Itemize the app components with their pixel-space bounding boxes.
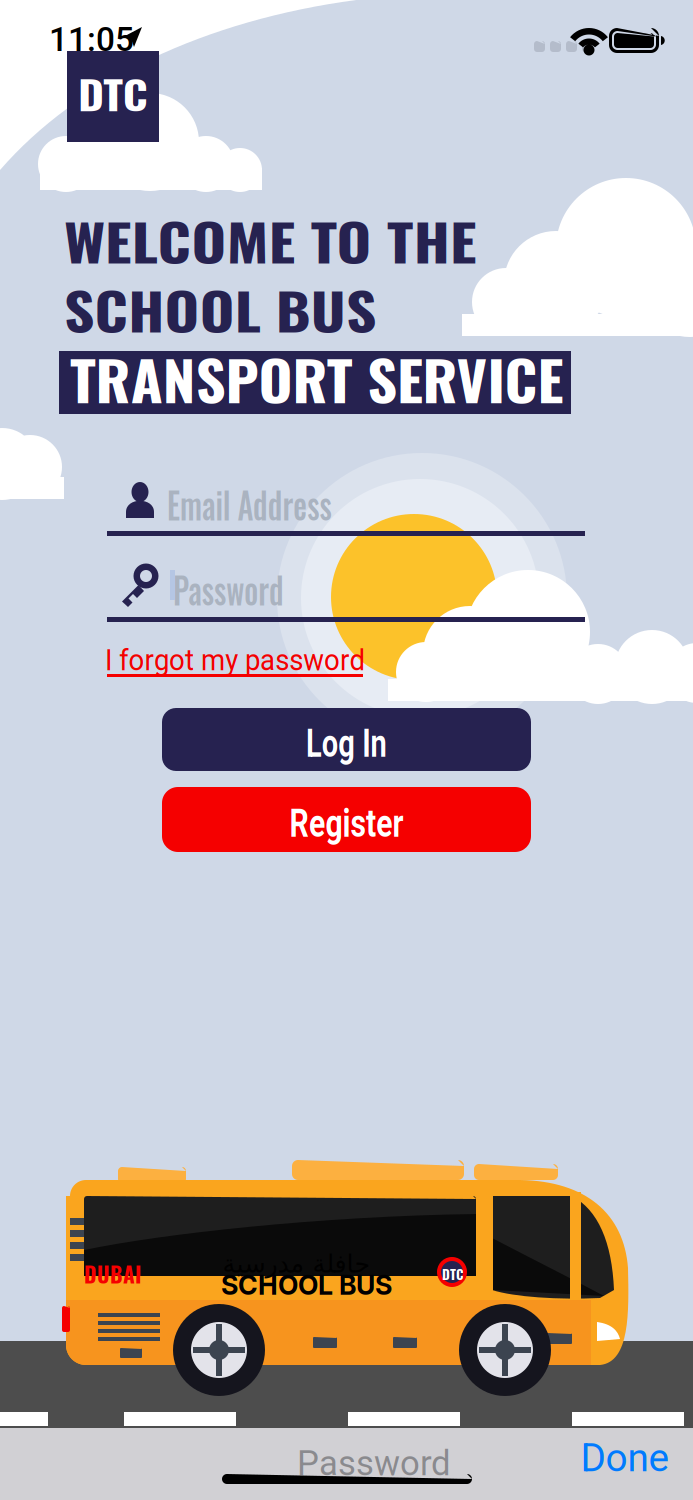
button[interactable]: I forgot my password xyxy=(105,645,382,689)
staticText: SCHOOL BUS xyxy=(221,1269,392,1301)
staticText: DTC xyxy=(78,65,139,122)
staticText: Password xyxy=(297,1443,451,1484)
staticText: DTC xyxy=(442,1264,464,1284)
staticText: 11:05 xyxy=(49,20,134,59)
staticText: Password xyxy=(173,561,308,616)
staticText: SCHOOL BUS xyxy=(64,272,331,347)
staticText: I forgot my password xyxy=(105,643,382,677)
button[interactable]: Done xyxy=(570,1430,680,1486)
staticText: Done xyxy=(580,1435,669,1481)
button[interactable]: Log In xyxy=(162,708,531,771)
staticText: Log In xyxy=(292,721,400,766)
staticText: TRANSPORT SERVICE xyxy=(70,338,533,419)
staticText: WELCOME TO THE xyxy=(64,203,417,278)
staticText: حافلة مدرسية xyxy=(222,1249,370,1278)
button[interactable]: Register xyxy=(162,787,531,852)
staticText: Email Address xyxy=(167,476,368,531)
staticText: DUBAI xyxy=(84,1258,141,1290)
staticText: Register xyxy=(273,801,419,846)
